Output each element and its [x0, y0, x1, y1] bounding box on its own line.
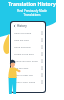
staticText: History: [17, 24, 27, 28]
staticText: Nice to meet you: [14, 73, 34, 76]
staticText: How are you?: [14, 38, 30, 41]
staticText: Where is the bus?: [14, 52, 34, 55]
button[interactable]: Back: [13, 24, 16, 27]
button[interactable]: Thank you very much: [11, 57, 45, 64]
staticText: Find Previously Made Translations: [17, 9, 47, 17]
button[interactable]: Good morning: [11, 43, 45, 50]
staticText: Translation History: [8, 1, 56, 8]
staticText: What is your name: [14, 80, 36, 83]
staticText: Thank you very much: [14, 59, 39, 62]
staticText: See you later: [14, 66, 29, 69]
button[interactable]: What is your name: [11, 78, 45, 85]
staticText: Good morning: [14, 45, 31, 48]
button[interactable]: How are you?: [11, 36, 45, 43]
button[interactable]: See you later: [11, 64, 45, 71]
button[interactable]: Hello my friend: [11, 29, 45, 36]
button[interactable]: Nice to meet you: [11, 71, 45, 78]
staticText: Hello my friend: [14, 31, 32, 34]
button[interactable]: Where is the bus?: [11, 50, 45, 57]
